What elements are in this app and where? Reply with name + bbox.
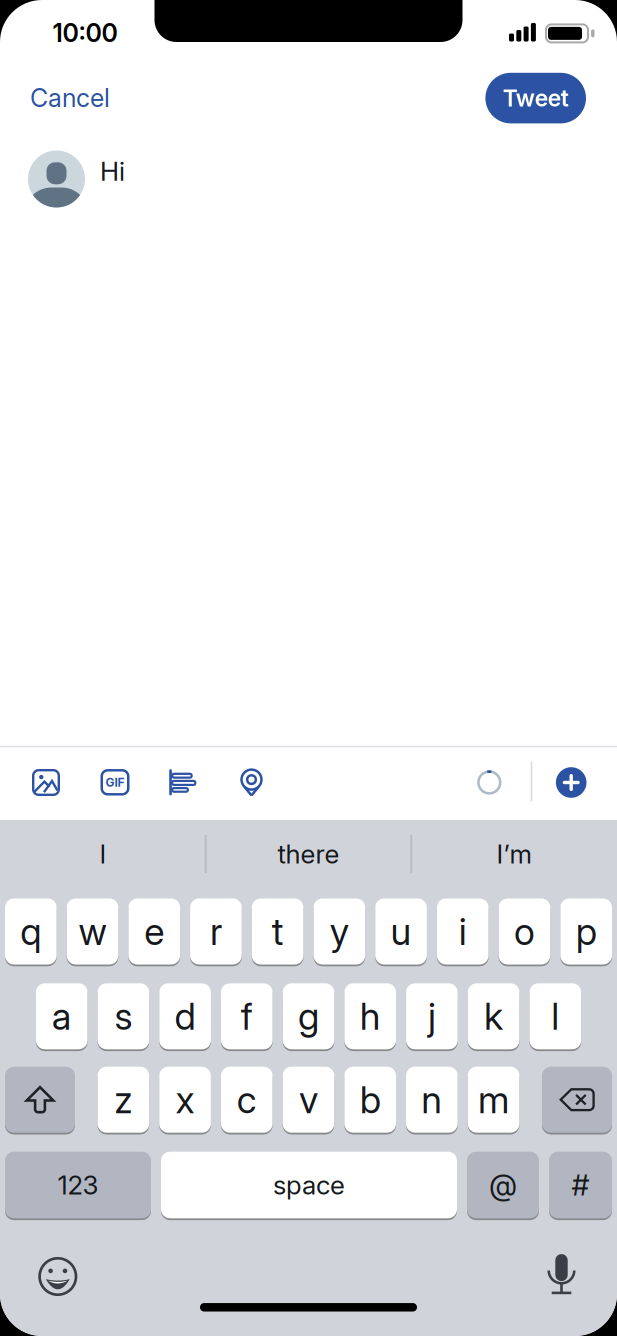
button[interactable]: space xyxy=(161,1152,457,1218)
staticText: n xyxy=(421,1077,442,1122)
staticText: I xyxy=(99,838,106,870)
staticText: space xyxy=(273,1169,345,1201)
button[interactable]: I xyxy=(8,822,198,886)
button[interactable]: Cancel xyxy=(15,76,125,120)
staticText: t xyxy=(272,909,284,954)
button[interactable]: o xyxy=(499,898,550,964)
button[interactable]: n xyxy=(406,1067,458,1133)
button[interactable] xyxy=(31,1249,85,1303)
staticText: a xyxy=(52,994,72,1039)
staticText: v xyxy=(299,1077,318,1122)
button[interactable]: d xyxy=(159,983,211,1049)
staticText: u xyxy=(391,909,412,954)
staticText: GIF xyxy=(105,775,124,789)
button[interactable] xyxy=(229,761,273,805)
button[interactable] xyxy=(542,1067,612,1133)
staticText: 10:00 xyxy=(52,18,117,48)
staticText: g xyxy=(298,994,319,1039)
button[interactable] xyxy=(549,760,593,804)
staticText: d xyxy=(175,994,196,1039)
button[interactable]: @ xyxy=(467,1152,539,1218)
button[interactable]: 123 xyxy=(5,1152,151,1218)
button[interactable]: q xyxy=(5,898,57,964)
staticText: I’m xyxy=(496,838,531,870)
staticText: s xyxy=(114,994,132,1039)
staticText: r xyxy=(210,909,222,954)
button[interactable]: k xyxy=(468,983,519,1049)
button[interactable]: a xyxy=(36,983,88,1049)
staticText: i xyxy=(459,909,467,954)
staticText: Hi xyxy=(100,155,125,187)
button[interactable]: c xyxy=(221,1067,273,1133)
staticText: l xyxy=(551,994,559,1039)
button[interactable]: e xyxy=(128,898,180,964)
button[interactable]: there xyxy=(213,822,403,886)
staticText: x xyxy=(176,1077,195,1122)
button[interactable]: Tweet xyxy=(485,73,586,123)
button[interactable]: w xyxy=(67,898,118,964)
staticText: o xyxy=(514,909,535,954)
button[interactable]: p xyxy=(560,898,612,964)
staticText: # xyxy=(571,1167,589,1203)
button[interactable]: GIF xyxy=(93,760,137,804)
staticText: y xyxy=(330,909,349,954)
button[interactable]: t xyxy=(252,898,303,964)
staticText: h xyxy=(360,994,381,1039)
button[interactable]: s xyxy=(98,983,149,1049)
button[interactable]: r xyxy=(190,898,242,964)
staticText: Cancel xyxy=(30,83,110,113)
staticText: q xyxy=(20,909,41,954)
staticText: @ xyxy=(489,1167,517,1203)
button[interactable]: Hi xyxy=(28,149,589,209)
staticText: j xyxy=(428,994,436,1039)
button[interactable]: g xyxy=(283,983,334,1049)
staticText: e xyxy=(144,909,164,954)
button[interactable]: j xyxy=(406,983,458,1049)
button[interactable]: v xyxy=(283,1067,334,1133)
staticText: Tweet xyxy=(503,84,569,112)
button[interactable]: x xyxy=(159,1067,211,1133)
staticText: w xyxy=(78,909,106,954)
staticText: p xyxy=(576,909,597,954)
button[interactable] xyxy=(24,760,68,804)
staticText: there xyxy=(277,838,339,870)
button[interactable]: I’m xyxy=(419,822,609,886)
button[interactable] xyxy=(161,760,205,804)
button[interactable]: i xyxy=(437,898,489,964)
button[interactable]: l xyxy=(529,983,581,1049)
staticText: 123 xyxy=(57,1169,98,1201)
staticText: m xyxy=(478,1077,509,1122)
staticText: c xyxy=(237,1077,257,1122)
staticText: b xyxy=(360,1077,381,1122)
button[interactable]: b xyxy=(344,1067,396,1133)
button[interactable]: h xyxy=(344,983,396,1049)
button[interactable]: m xyxy=(468,1067,519,1133)
button[interactable]: u xyxy=(375,898,427,964)
staticText: z xyxy=(114,1077,132,1122)
staticText: k xyxy=(484,994,503,1039)
staticText: f xyxy=(241,994,253,1039)
button[interactable] xyxy=(5,1067,75,1133)
button[interactable]: # xyxy=(549,1152,612,1218)
button[interactable]: y xyxy=(313,898,365,964)
button[interactable] xyxy=(534,1247,588,1301)
button[interactable]: z xyxy=(97,1067,149,1133)
button[interactable]: f xyxy=(221,983,273,1049)
